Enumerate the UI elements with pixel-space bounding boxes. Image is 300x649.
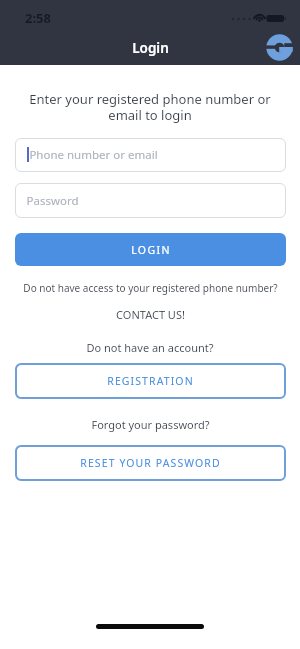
button[interactable]: RESET YOUR PASSWORD <box>15 445 286 481</box>
button[interactable]: LOGIN <box>15 233 286 266</box>
staticText: Enter your registered phone number or em… <box>29 90 271 124</box>
button[interactable]: CONTACT US! <box>116 304 185 319</box>
staticText: Do not have access to your registered ph… <box>23 281 278 295</box>
button[interactable]: REGISTRATION <box>15 363 286 399</box>
staticText: Do not have an account? <box>86 340 214 355</box>
staticText: Login <box>132 39 169 57</box>
staticText: LOGIN <box>131 243 171 257</box>
staticText: 2:58 <box>25 9 51 27</box>
button[interactable]: Password <box>15 183 286 218</box>
button[interactable]: Phone number or email <box>15 138 286 172</box>
staticText: Password <box>26 193 79 209</box>
staticText: CONTACT US! <box>116 307 185 322</box>
staticText: REGISTRATION <box>107 374 194 388</box>
staticText: Forgot your password? <box>91 417 210 432</box>
staticText: RESET YOUR PASSWORD <box>80 456 221 470</box>
staticText: Phone number or email <box>29 147 158 163</box>
